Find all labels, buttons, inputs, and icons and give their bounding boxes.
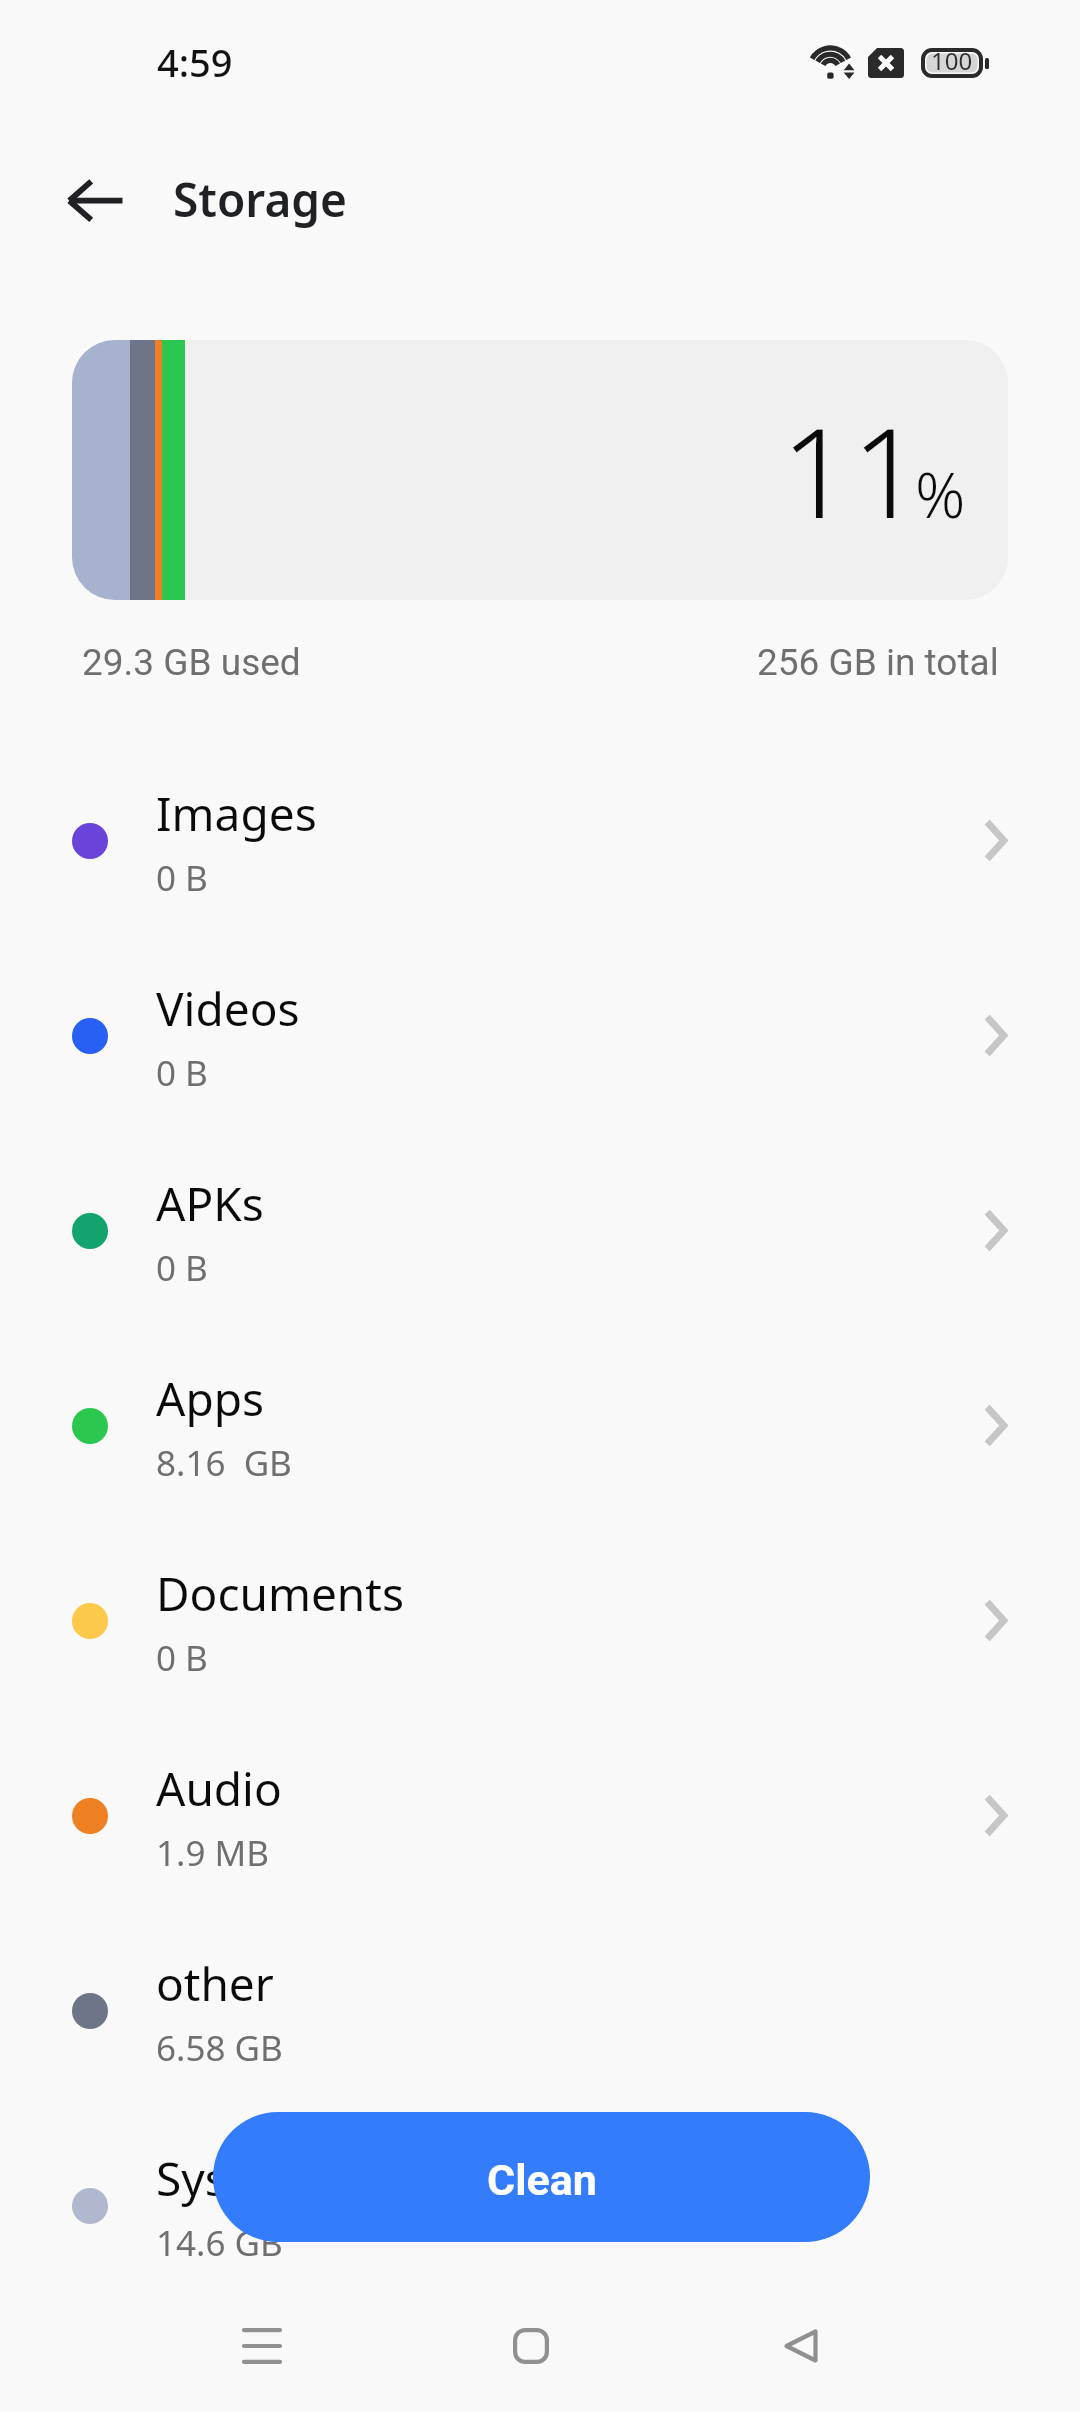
staticText: 14.6 GB xyxy=(156,2219,283,2267)
staticText: 29.3 GB used xyxy=(82,641,301,684)
staticText: 4:59 xyxy=(157,36,233,88)
button[interactable]: Back xyxy=(54,160,138,242)
staticText: Videos xyxy=(156,977,300,1040)
staticText: Apps xyxy=(156,1367,265,1430)
staticText: Images xyxy=(156,782,317,845)
staticText: 11 xyxy=(781,385,923,554)
staticText: 0 B xyxy=(156,1634,208,1682)
staticText: Audio xyxy=(156,1757,282,1820)
staticText: other xyxy=(156,1952,274,2015)
staticText: Clean xyxy=(487,2155,597,2205)
staticText: 0 B xyxy=(156,1049,208,1097)
staticText: 100 xyxy=(931,44,973,77)
button[interactable]: other xyxy=(0,1913,1080,2108)
staticText: 256 GB in total xyxy=(757,641,999,684)
button[interactable]: Back xyxy=(755,2300,847,2392)
staticText: Documents xyxy=(156,1562,404,1625)
staticText: 0 B xyxy=(156,854,208,902)
button[interactable]: Apps xyxy=(0,1328,1080,1523)
staticText: System xyxy=(156,2147,313,2210)
staticText: APKs xyxy=(156,1172,264,1235)
staticText: 1.9 MB xyxy=(156,1829,270,1877)
button[interactable]: Videos xyxy=(0,938,1080,1133)
staticText: 6.58 GB xyxy=(156,2024,283,2072)
button[interactable]: Recent apps xyxy=(216,2300,308,2392)
staticText: Storage xyxy=(173,168,348,231)
button[interactable]: Audio xyxy=(0,1718,1080,1913)
staticText: 0 B xyxy=(156,1244,208,1292)
button[interactable]: Home xyxy=(485,2300,577,2392)
staticText: 8.16 GB xyxy=(156,1439,292,1487)
button[interactable]: System xyxy=(0,2108,1080,2303)
button[interactable]: APKs xyxy=(0,1133,1080,1328)
button[interactable]: Documents xyxy=(0,1523,1080,1718)
button[interactable]: Images xyxy=(0,743,1080,938)
button[interactable]: Clean xyxy=(213,2112,870,2242)
staticText: % xyxy=(915,452,966,536)
